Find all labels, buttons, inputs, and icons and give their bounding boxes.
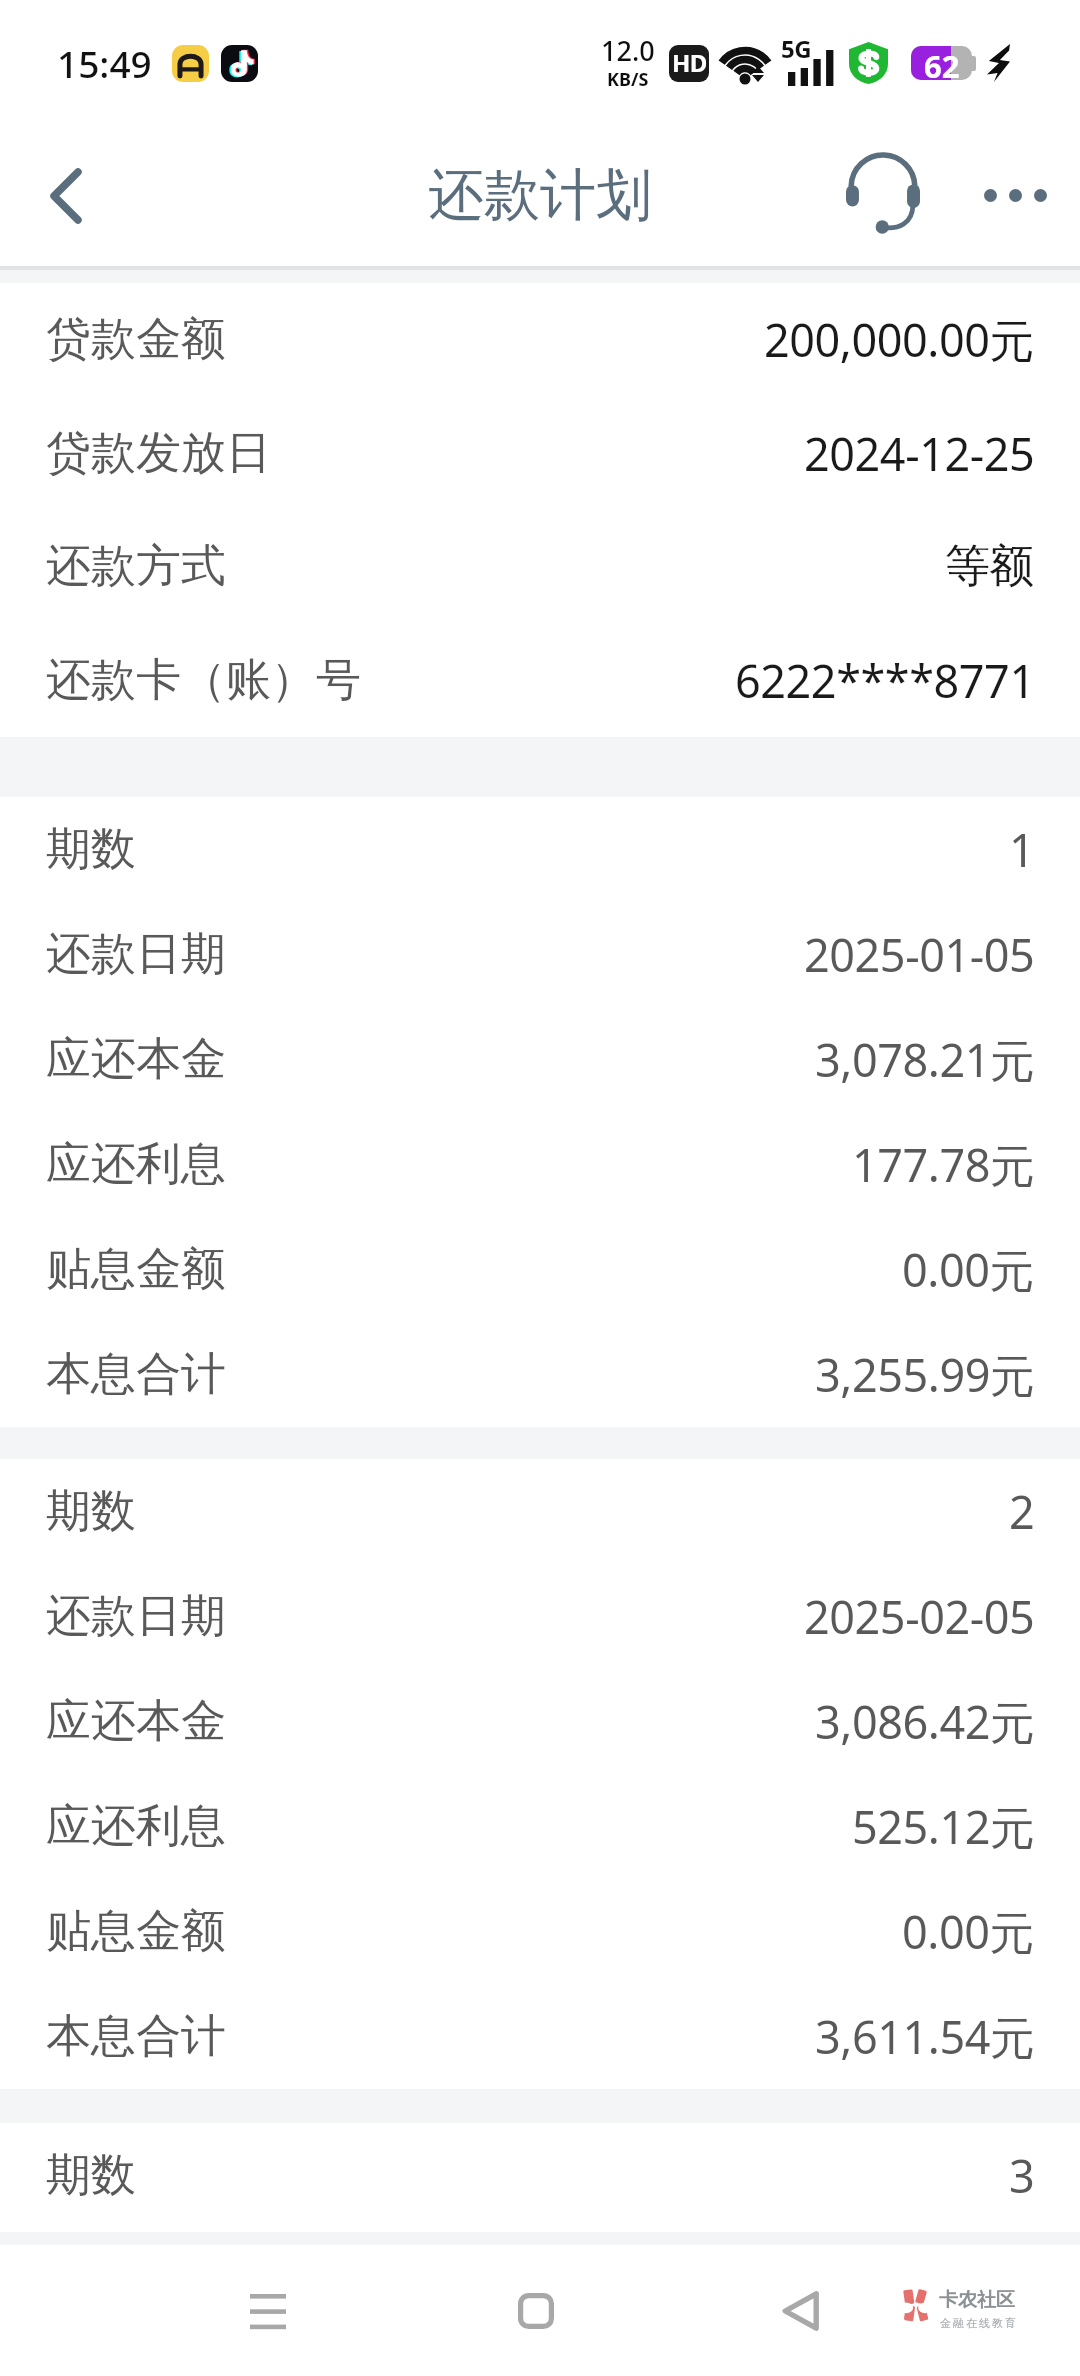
staticText: 贷款发放日 bbox=[46, 425, 271, 482]
staticText: HD bbox=[672, 46, 707, 79]
button[interactable]: Back bbox=[740, 2251, 860, 2371]
staticText: 15:49 bbox=[57, 38, 152, 88]
staticText: 期数 bbox=[46, 821, 136, 878]
button[interactable]: More options bbox=[954, 128, 1074, 264]
staticText: 0.00元 bbox=[902, 1901, 1035, 1962]
staticText: 2025-02-05 bbox=[804, 1586, 1035, 1647]
staticText: 2025-01-05 bbox=[804, 924, 1035, 985]
button[interactable]: Recent apps bbox=[208, 2251, 328, 2371]
staticText: 贷款金额 bbox=[46, 311, 226, 368]
staticText: 贴息金额 bbox=[46, 1903, 226, 1960]
staticText: 本息合计 bbox=[46, 1346, 226, 1403]
staticText: 本息合计 bbox=[46, 2008, 226, 2065]
staticText: 应还利息 bbox=[46, 1136, 226, 1193]
staticText: KB/S bbox=[607, 67, 649, 92]
staticText: 还款日期 bbox=[46, 926, 226, 983]
staticText: 贴息金额 bbox=[46, 1241, 226, 1298]
staticText: 3,255.99元 bbox=[815, 1344, 1035, 1405]
button[interactable]: Customer service bbox=[826, 128, 938, 264]
staticText: 3,611.54元 bbox=[815, 2006, 1035, 2067]
staticText: 177.78元 bbox=[852, 1134, 1035, 1195]
staticText: 期数 bbox=[46, 2147, 136, 2204]
staticText: 金融在线教育 bbox=[939, 2316, 1017, 2330]
staticText: 3,086.42元 bbox=[815, 1691, 1035, 1752]
staticText: 应还利息 bbox=[46, 1798, 226, 1855]
staticText: 200,000.00元 bbox=[764, 309, 1035, 370]
staticText: 卡农社区 bbox=[939, 2288, 1015, 2312]
staticText: 应还本金 bbox=[46, 1031, 226, 1088]
staticText: 525.12元 bbox=[852, 1796, 1035, 1857]
staticText: 3 bbox=[1009, 2145, 1035, 2206]
staticText: 6222****8771 bbox=[735, 650, 1035, 711]
button[interactable]: Home bbox=[476, 2251, 596, 2371]
staticText: 2 bbox=[1009, 1481, 1035, 1542]
staticText: 还款计划 bbox=[428, 160, 652, 231]
staticText: 2024-12-25 bbox=[804, 423, 1035, 484]
staticText: 等额 bbox=[945, 538, 1035, 595]
staticText: 5G bbox=[781, 32, 812, 65]
staticText: 还款日期 bbox=[46, 1588, 226, 1645]
staticText: 1 bbox=[1009, 819, 1035, 880]
staticText: 应还本金 bbox=[46, 1693, 226, 1750]
staticText: 还款方式 bbox=[46, 538, 226, 595]
staticText: 3,078.21元 bbox=[815, 1029, 1035, 1090]
staticText: 12.0 bbox=[601, 32, 655, 69]
staticText: 期数 bbox=[46, 1483, 136, 1540]
button[interactable]: Back bbox=[0, 128, 132, 264]
staticText: 0.00元 bbox=[902, 1239, 1035, 1300]
staticText: 还款卡（账）号 bbox=[46, 652, 361, 709]
staticText: 62 bbox=[924, 46, 960, 79]
